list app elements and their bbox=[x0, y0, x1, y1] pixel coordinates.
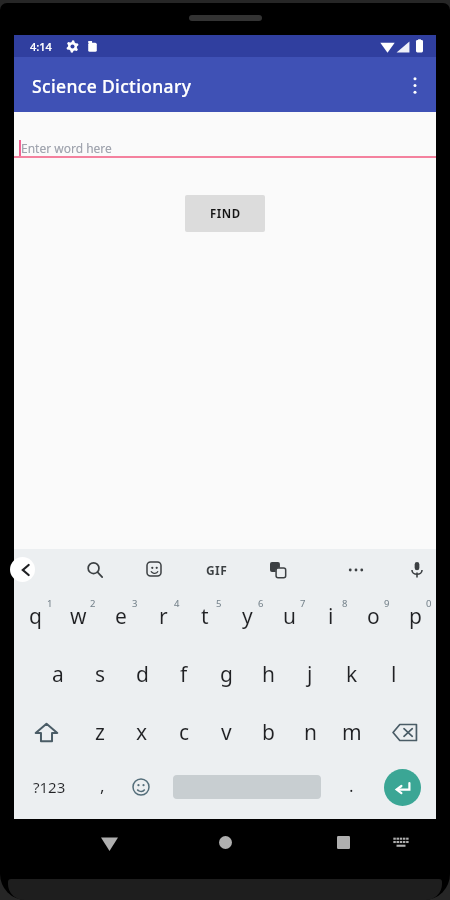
staticText: r bbox=[159, 602, 168, 631]
staticText: y bbox=[242, 602, 253, 631]
staticText: p bbox=[409, 602, 422, 631]
staticText: 1 bbox=[47, 597, 53, 610]
button[interactable]: r bbox=[142, 590, 184, 645]
staticText: . bbox=[349, 774, 354, 797]
button[interactable]: Home bbox=[209, 826, 241, 858]
button[interactable]: e bbox=[100, 590, 142, 645]
button[interactable]: b bbox=[247, 703, 289, 761]
staticText: c bbox=[179, 718, 190, 747]
staticText: q bbox=[29, 602, 42, 631]
button[interactable]: Enter bbox=[368, 758, 436, 816]
staticText: 3 bbox=[132, 597, 138, 610]
staticText: h bbox=[262, 660, 275, 689]
button[interactable]: a bbox=[36, 645, 79, 703]
staticText: z bbox=[95, 718, 105, 747]
button[interactable]: u bbox=[268, 590, 310, 645]
button[interactable]: q bbox=[14, 590, 57, 645]
button[interactable]: Backspace bbox=[373, 703, 436, 761]
button[interactable]: c bbox=[163, 703, 205, 761]
staticText: 5 bbox=[216, 597, 222, 610]
staticText: x bbox=[136, 718, 148, 747]
button[interactable]: ?123 bbox=[14, 758, 84, 816]
button[interactable]: More options bbox=[391, 61, 439, 109]
button[interactable]: d bbox=[121, 645, 163, 703]
staticText: GIF bbox=[206, 562, 228, 578]
button[interactable]: Back bbox=[93, 827, 125, 859]
button[interactable]: FIND bbox=[185, 195, 265, 232]
button[interactable]: l bbox=[373, 645, 415, 703]
staticText: m bbox=[342, 718, 362, 747]
button[interactable]: More bbox=[336, 549, 376, 590]
button[interactable]: GIF bbox=[197, 549, 237, 590]
button[interactable]: Shift bbox=[14, 703, 78, 761]
button[interactable]: x bbox=[121, 703, 163, 761]
button[interactable]: Switch keyboard bbox=[387, 828, 415, 856]
staticText: n bbox=[304, 718, 317, 747]
button[interactable]: Enter word here bbox=[14, 138, 436, 158]
button[interactable]: t bbox=[184, 590, 226, 645]
staticText: i bbox=[328, 602, 334, 631]
staticText: s bbox=[95, 660, 106, 689]
button[interactable]: j bbox=[289, 645, 331, 703]
staticText: l bbox=[391, 660, 397, 689]
button[interactable]: . bbox=[334, 758, 368, 816]
button[interactable]: v bbox=[205, 703, 247, 761]
staticText: 0 bbox=[426, 597, 432, 610]
staticText: w bbox=[70, 602, 87, 631]
staticText: e bbox=[115, 602, 127, 631]
staticText: u bbox=[283, 602, 296, 631]
button[interactable]: Stickers bbox=[134, 549, 174, 590]
staticText: t bbox=[201, 602, 209, 631]
staticText: a bbox=[52, 660, 64, 689]
button[interactable]: k bbox=[331, 645, 373, 703]
staticText: Science Dictionary bbox=[32, 74, 192, 98]
button[interactable]: m bbox=[331, 703, 373, 761]
button[interactable]: Recents bbox=[327, 826, 359, 858]
button[interactable]: h bbox=[247, 645, 289, 703]
staticText: d bbox=[136, 660, 149, 689]
button[interactable]: Emoji bbox=[122, 758, 160, 816]
staticText: FIND bbox=[210, 206, 241, 222]
button[interactable]: n bbox=[289, 703, 331, 761]
button[interactable]: y bbox=[226, 590, 268, 645]
button[interactable]: , bbox=[84, 758, 120, 816]
button[interactable]: Space bbox=[160, 758, 334, 816]
button[interactable]: o bbox=[352, 590, 394, 645]
staticText: Enter word here bbox=[21, 140, 112, 156]
button[interactable]: Search bbox=[75, 549, 115, 590]
button[interactable]: i bbox=[310, 590, 352, 645]
button[interactable]: Voice input bbox=[397, 549, 437, 590]
staticText: f bbox=[180, 660, 188, 689]
button[interactable]: g bbox=[205, 645, 247, 703]
staticText: 9 bbox=[384, 597, 390, 610]
button[interactable]: s bbox=[79, 645, 121, 703]
button[interactable]: z bbox=[78, 703, 121, 761]
button[interactable]: Back bbox=[2, 549, 43, 590]
staticText: 2 bbox=[90, 597, 96, 610]
staticText: k bbox=[346, 660, 358, 689]
staticText: 4:14 bbox=[30, 39, 52, 54]
staticText: j bbox=[307, 660, 313, 689]
staticText: 8 bbox=[342, 597, 348, 610]
button[interactable]: Translate bbox=[258, 549, 298, 590]
staticText: b bbox=[262, 718, 275, 747]
button[interactable]: f bbox=[163, 645, 205, 703]
staticText: o bbox=[367, 602, 380, 631]
staticText: 6 bbox=[258, 597, 264, 610]
staticText: 7 bbox=[300, 597, 306, 610]
button[interactable]: p bbox=[394, 590, 436, 645]
staticText: ?123 bbox=[33, 777, 66, 797]
button[interactable]: w bbox=[57, 590, 100, 645]
staticText: g bbox=[220, 660, 233, 689]
staticText: , bbox=[100, 774, 105, 797]
staticText: v bbox=[221, 718, 232, 747]
staticText: 4 bbox=[174, 597, 180, 610]
